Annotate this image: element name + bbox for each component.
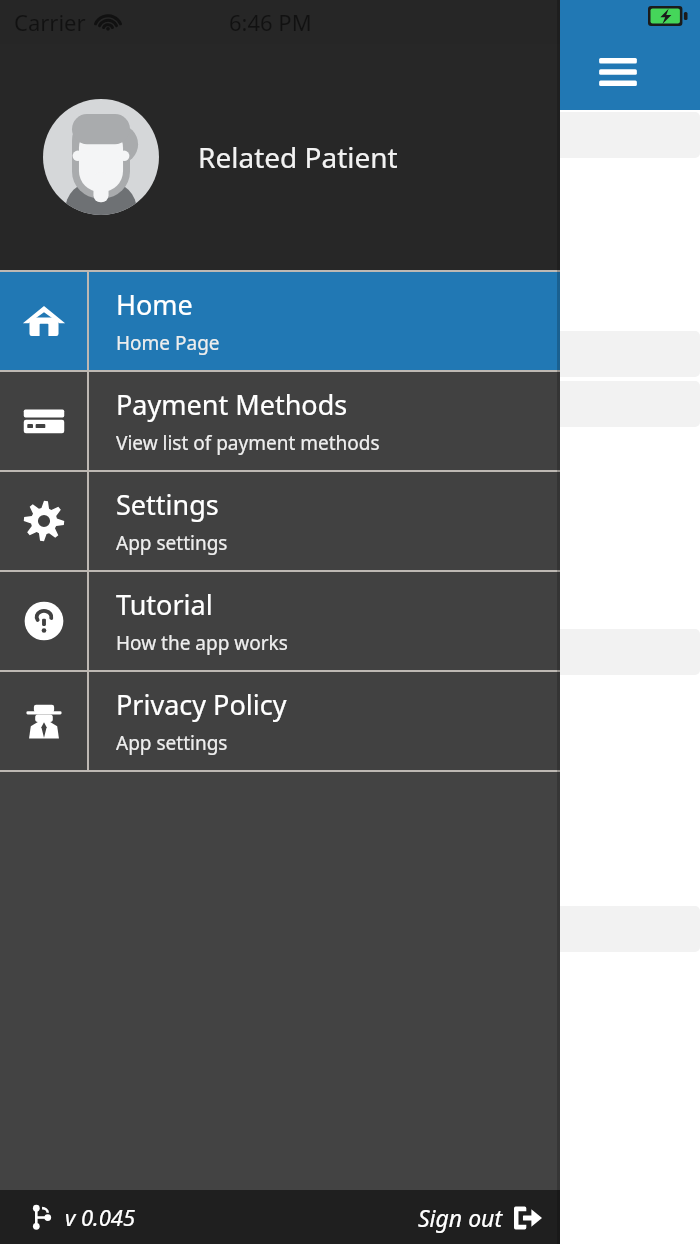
button[interactable]: Settings bbox=[0, 472, 560, 570]
staticText: Settings bbox=[116, 486, 219, 523]
staticText: Carrier bbox=[14, 7, 86, 37]
staticText: View list of payment methods bbox=[116, 430, 380, 456]
staticText: Profile Options bbox=[49, 118, 225, 152]
button[interactable]: ? bbox=[20, 968, 700, 1123]
button[interactable]: Add Profile bbox=[20, 174, 700, 329]
button[interactable]: v 0.045 bbox=[28, 1202, 136, 1232]
button[interactable]: Virtual bbox=[20, 691, 700, 904]
staticText: COVID-19 bbox=[32, 569, 127, 598]
staticText: Payment Methods bbox=[116, 386, 348, 423]
staticText: Related Patient bbox=[198, 138, 398, 176]
staticText: Active Consultations bbox=[49, 337, 288, 371]
staticText: Privacy Policy bbox=[116, 686, 287, 723]
button[interactable]: Home bbox=[0, 272, 560, 370]
button[interactable]: Sign out bbox=[418, 1202, 542, 1233]
button[interactable]: Menu bbox=[595, 52, 641, 92]
staticText: App settings bbox=[116, 530, 228, 556]
staticText: Consultations bbox=[49, 635, 211, 669]
button[interactable]: Screening bbox=[3, 381, 700, 427]
staticText: Sign out bbox=[418, 1202, 503, 1233]
staticText: App settings bbox=[116, 730, 228, 756]
staticText: Home bbox=[116, 286, 193, 323]
staticText: Screening bbox=[49, 387, 166, 421]
staticText: Tutorial bbox=[116, 586, 213, 623]
button[interactable]: Other bbox=[3, 906, 700, 952]
staticText: v 0.045 bbox=[65, 1202, 136, 1232]
staticText: Self bbox=[61, 598, 98, 627]
staticText: Home Page bbox=[116, 330, 220, 356]
button[interactable]: Payment Methods bbox=[0, 372, 560, 470]
button[interactable]: Tutorial bbox=[0, 572, 560, 670]
staticText: Add Profile bbox=[25, 300, 134, 329]
button[interactable]: COVID-19 bbox=[20, 443, 700, 627]
button[interactable]: Consultations bbox=[3, 629, 700, 675]
button[interactable]: Privacy Policy bbox=[0, 672, 560, 770]
button[interactable]: Profile Options bbox=[3, 112, 700, 158]
button[interactable]: Active Consultations bbox=[3, 331, 700, 377]
staticText: How the app works bbox=[116, 630, 288, 656]
staticText: 6:46 PM bbox=[229, 7, 312, 37]
